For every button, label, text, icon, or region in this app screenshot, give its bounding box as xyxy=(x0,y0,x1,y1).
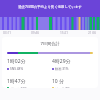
staticText: 21:56 xyxy=(88,31,97,35)
staticText: 過去7日間の平均より長く使用しています xyxy=(0,4,100,9)
staticText: 4時29分 xyxy=(52,58,71,65)
staticText: 10 分 xyxy=(52,78,65,85)
staticText: 09:46 xyxy=(31,31,40,35)
button[interactable]: 1時02分 xyxy=(7,58,52,71)
button[interactable]: 4時29分 xyxy=(52,58,98,71)
button[interactable]: 10 分 xyxy=(52,78,98,88)
staticText: 動画 31% xyxy=(55,67,69,71)
button[interactable]: 1時47分 xyxy=(7,78,52,88)
staticText: 1時02分 xyxy=(7,58,26,65)
staticText: ゲーム 13% xyxy=(10,87,27,88)
staticText: 1時47分 xyxy=(7,78,26,85)
staticText: 15:21 xyxy=(60,31,69,35)
staticText: その他 8% xyxy=(55,87,71,88)
staticText: 7日間合計 xyxy=(2,41,98,47)
staticText: SNS 48% xyxy=(10,67,24,71)
staticText: 03:11 xyxy=(3,31,12,35)
button[interactable]: 7日間合計 xyxy=(2,37,98,88)
